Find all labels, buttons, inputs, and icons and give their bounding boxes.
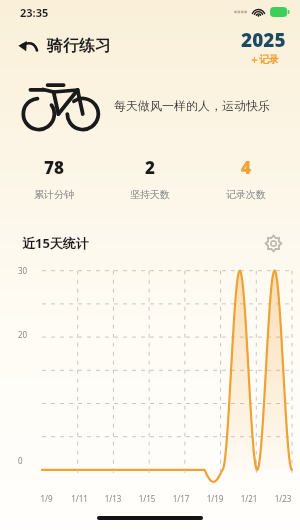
staticText: 坚持天数 [130, 188, 170, 201]
staticText: 1/9 [30, 493, 63, 504]
staticText: 累计分钟 [34, 188, 74, 201]
button[interactable]: 78 [6, 154, 102, 203]
button[interactable]: Settings [265, 235, 282, 252]
staticText: 骑行练习 [47, 36, 111, 56]
staticText: 23:35 [20, 5, 49, 20]
staticText: 1/23 [266, 493, 300, 504]
staticText: ＋记录 [249, 53, 279, 66]
staticText: 0 [18, 455, 23, 466]
staticText: 1/15 [130, 493, 164, 504]
staticText: 78 [44, 156, 64, 179]
staticText: 2025 [241, 27, 286, 53]
staticText: 每天做风一样的人，运动快乐 [114, 98, 270, 113]
staticText: 1/11 [63, 493, 96, 504]
staticText: 1/21 [232, 493, 266, 504]
staticText: 1/13 [96, 493, 130, 504]
staticText: 近15天统计 [22, 234, 89, 252]
button[interactable]: 4 [198, 154, 294, 203]
staticText: 记录次数 [226, 188, 266, 201]
staticText: 20 [18, 329, 28, 340]
staticText: 1/19 [198, 493, 232, 504]
staticText: 2 [145, 156, 155, 179]
button[interactable]: 2025 [241, 27, 286, 66]
button[interactable]: 2 [102, 154, 198, 203]
button[interactable]: Back [14, 32, 115, 60]
other: Back [18, 36, 38, 56]
staticText: 30 [18, 265, 28, 276]
staticText: 4 [241, 156, 251, 179]
staticText: 1/17 [164, 493, 198, 504]
